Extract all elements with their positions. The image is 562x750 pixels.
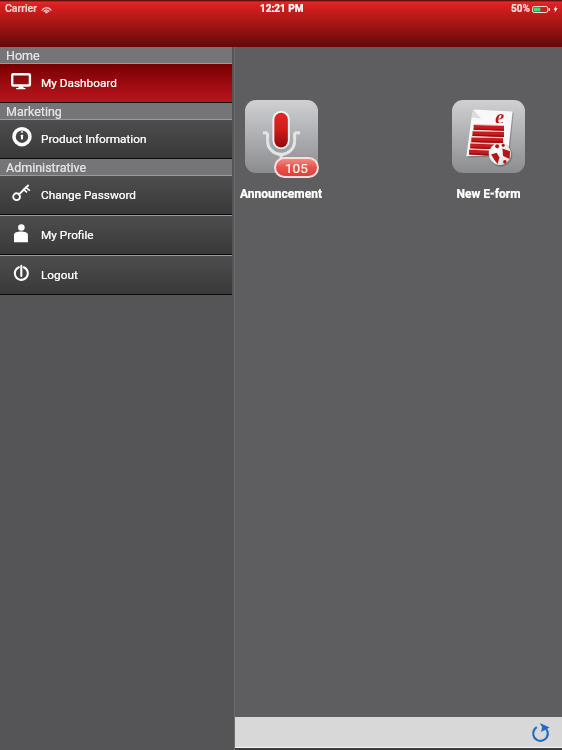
staticText: 12:21 PM	[260, 3, 304, 15]
button[interactable]: e	[416, 100, 560, 203]
staticText: Announcement	[240, 187, 322, 201]
staticText: Home	[6, 48, 40, 63]
staticText: My Dashboard	[41, 76, 117, 90]
button[interactable]: 105	[235, 100, 353, 203]
staticText: Marketing	[6, 104, 62, 119]
staticText: My Profile	[41, 228, 94, 242]
button[interactable]: Product Information	[0, 119, 232, 159]
button[interactable]: My Profile	[0, 215, 232, 255]
button[interactable]: Refresh	[525, 717, 555, 747]
button[interactable]: Change Password	[0, 175, 232, 215]
button[interactable]: Logout	[0, 255, 232, 295]
button[interactable]: My Dashboard	[0, 63, 232, 103]
staticText: Product Information	[41, 132, 147, 146]
staticText: Logout	[41, 268, 78, 282]
staticText: 50%	[511, 3, 530, 15]
staticText: 105	[285, 160, 308, 176]
staticText: Administrative	[6, 160, 87, 175]
staticText: Change Password	[41, 188, 137, 202]
staticText: New E-form	[456, 187, 521, 201]
staticText: e	[495, 105, 505, 123]
staticText: Carrier	[5, 2, 37, 14]
